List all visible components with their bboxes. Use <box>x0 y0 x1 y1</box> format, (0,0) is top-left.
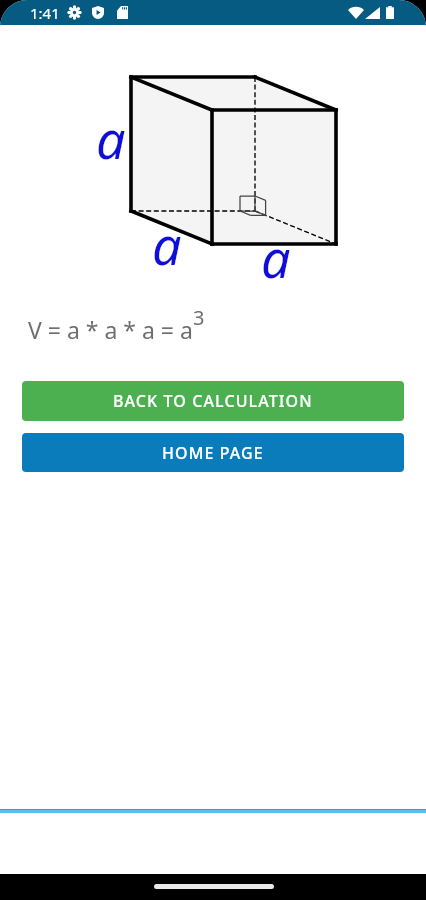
staticText: V = a * a * a = a3 <box>28 304 205 346</box>
staticText: a <box>261 222 291 293</box>
staticText: 1:41 <box>30 3 60 23</box>
button[interactable]: BACK TO CALCULATION <box>22 381 404 421</box>
staticText: BACK TO CALCULATION <box>113 390 313 412</box>
button[interactable]: HOME PAGE <box>22 433 404 472</box>
staticText: HOME PAGE <box>162 442 264 464</box>
staticText: a <box>152 209 182 280</box>
staticText: a <box>96 103 126 174</box>
